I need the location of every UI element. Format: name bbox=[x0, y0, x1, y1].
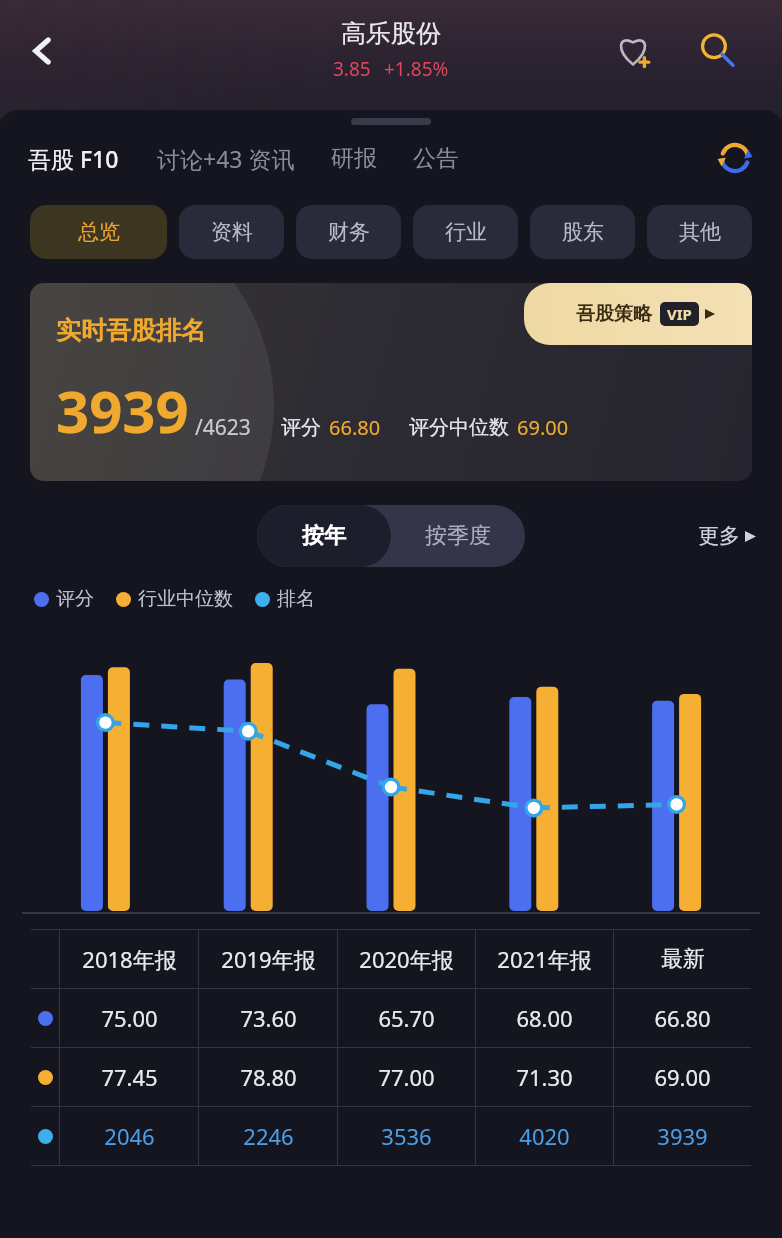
button[interactable]: 评分 bbox=[34, 587, 94, 611]
button[interactable]: 讨论+43 资讯 bbox=[157, 137, 295, 180]
staticText: 3939 bbox=[56, 371, 189, 450]
staticText: +1.85% bbox=[384, 56, 449, 82]
staticText: 评分中位数 bbox=[409, 415, 509, 440]
staticText: 3939 bbox=[657, 1121, 708, 1151]
staticText: 75.00 bbox=[101, 1003, 158, 1033]
staticText: 2019年报 bbox=[221, 944, 316, 974]
staticText: 68.00 bbox=[516, 1003, 573, 1033]
button[interactable]: 公告 bbox=[413, 138, 459, 179]
button[interactable]: Back bbox=[14, 22, 72, 80]
button[interactable]: 研报 bbox=[331, 138, 377, 179]
staticText: 评分 bbox=[56, 587, 94, 611]
button[interactable]: 资料 bbox=[179, 205, 284, 259]
button[interactable]: 行业中位数 bbox=[116, 587, 233, 611]
staticText: 更多 bbox=[698, 523, 740, 549]
staticText: 实时吾股排名 bbox=[56, 315, 206, 346]
staticText: 行业 bbox=[445, 219, 487, 245]
staticText: 总览 bbox=[78, 219, 120, 245]
button[interactable]: 按季度 bbox=[391, 505, 525, 567]
staticText: 资料 bbox=[211, 219, 253, 245]
staticText: 行业中位数 bbox=[138, 587, 233, 611]
button[interactable]: Add to favorites bbox=[604, 21, 662, 79]
staticText: 吾股 F10 bbox=[28, 143, 119, 174]
staticText: 按年 bbox=[302, 522, 346, 550]
staticText: 69.00 bbox=[517, 414, 569, 441]
staticText: 3.85 bbox=[333, 56, 371, 82]
button[interactable]: 吾股 F10 bbox=[28, 137, 119, 180]
staticText: 73.60 bbox=[240, 1003, 297, 1033]
staticText: 研报 bbox=[331, 144, 377, 173]
staticText: 69.00 bbox=[654, 1062, 711, 1092]
button[interactable]: 排名 bbox=[255, 587, 315, 611]
button[interactable]: Search bbox=[688, 21, 746, 79]
staticText: 4020 bbox=[519, 1121, 570, 1151]
staticText: 2046 bbox=[104, 1121, 155, 1151]
staticText: 排名 bbox=[277, 587, 315, 611]
staticText: 65.70 bbox=[378, 1003, 435, 1033]
button[interactable]: 吾股策略 bbox=[30, 283, 752, 481]
staticText: 66.80 bbox=[654, 1003, 711, 1033]
staticText: 高乐股份 bbox=[341, 18, 441, 49]
staticText: 评分 bbox=[281, 415, 321, 440]
staticText: 77.45 bbox=[101, 1062, 158, 1092]
staticText: 71.30 bbox=[516, 1062, 573, 1092]
button[interactable]: Refresh bbox=[708, 131, 762, 185]
staticText: 2018年报 bbox=[82, 944, 177, 974]
staticText: VIP bbox=[667, 304, 692, 324]
staticText: 66.80 bbox=[329, 414, 381, 441]
staticText: 财务 bbox=[328, 219, 370, 245]
button[interactable]: 按年 bbox=[257, 505, 391, 567]
button[interactable]: 财务 bbox=[296, 205, 401, 259]
staticText: 2021年报 bbox=[497, 944, 592, 974]
staticText: 最新 bbox=[661, 945, 705, 973]
staticText: 3536 bbox=[381, 1121, 432, 1151]
staticText: 吾股策略 bbox=[576, 302, 652, 326]
button[interactable]: 其他 bbox=[647, 205, 752, 259]
staticText: /4623 bbox=[195, 413, 251, 442]
button[interactable]: 吾股策略 bbox=[524, 283, 752, 345]
button[interactable]: 行业 bbox=[413, 205, 518, 259]
button[interactable]: 更多 bbox=[698, 523, 756, 549]
staticText: 按季度 bbox=[425, 522, 491, 550]
staticText: 其他 bbox=[679, 219, 721, 245]
staticText: 2246 bbox=[243, 1121, 294, 1151]
button[interactable]: 总览 bbox=[30, 205, 167, 259]
button[interactable]: 股东 bbox=[530, 205, 635, 259]
staticText: 股东 bbox=[562, 219, 604, 245]
staticText: 77.00 bbox=[378, 1062, 435, 1092]
staticText: 公告 bbox=[413, 144, 459, 173]
staticText: 2020年报 bbox=[359, 944, 454, 974]
staticText: 78.80 bbox=[240, 1062, 297, 1092]
staticText: 讨论+43 资讯 bbox=[157, 143, 295, 174]
